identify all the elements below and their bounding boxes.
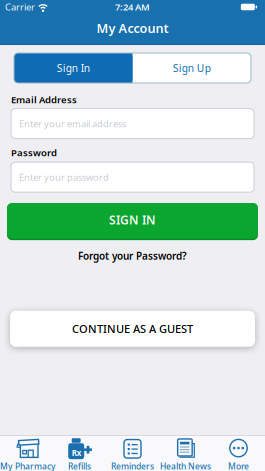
staticText: My Pharmacy [0,460,56,471]
button[interactable]: Forgot your Password? [78,249,187,263]
button[interactable]: Sign Up [132,53,251,83]
staticText: Rx [72,447,82,458]
button[interactable]: My Pharmacy [0,435,53,471]
button[interactable]: Sign In [14,53,132,83]
staticText: Refills [68,460,91,471]
staticText: Enter your password [19,171,109,183]
staticText: More [228,460,249,471]
button[interactable]: SIGN IN [7,203,258,240]
staticText: Email Address [11,93,77,106]
staticText: Password [11,146,57,159]
staticText: Reminders [111,460,154,471]
staticText: SIGN IN [109,212,156,228]
staticText: Sign Up [173,61,211,75]
staticText: My Account [96,19,168,37]
staticText: Sign In [57,61,90,75]
button[interactable]: Rx [53,435,106,471]
staticText: Health News [160,460,211,471]
button[interactable]: More [212,435,265,471]
button[interactable]: Reminders [106,435,159,471]
staticText: CONTINUE AS A GUEST [72,321,193,336]
staticText: 7:24 AM [115,1,150,13]
staticText: Enter your email address [19,117,126,130]
staticText: Forgot your Password? [78,249,187,263]
staticText: Carrier [5,1,35,13]
button[interactable]: Health News [159,435,212,471]
button[interactable]: CONTINUE AS A GUEST [10,311,255,347]
